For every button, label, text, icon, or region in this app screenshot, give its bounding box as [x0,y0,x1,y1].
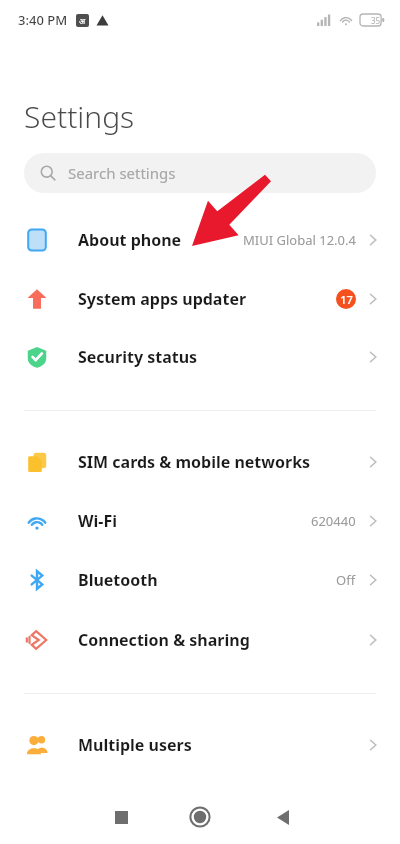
staticText: 35 [371,15,381,26]
button[interactable]: System apps updater [0,273,400,325]
button[interactable]: Bluetooth [0,554,400,606]
staticText: Search settings [68,163,176,183]
staticText: Security status [78,346,198,368]
staticText: Settings [24,96,135,137]
staticText: Multiple users [78,734,192,756]
button[interactable]: Search settings [24,153,376,193]
staticText: अ [79,15,86,26]
staticText: SIM cards & mobile networks [78,451,311,473]
button[interactable]: Multiple users [0,719,400,771]
button[interactable]: Recents [104,800,138,834]
button[interactable]: Security status [0,331,400,383]
staticText: 3:40 PM [18,11,68,29]
staticText: 620440 [311,512,356,530]
staticText: System apps updater [78,288,247,310]
button[interactable]: Wi-Fi [0,495,400,547]
staticText: 17 [340,292,353,307]
button[interactable]: Home [182,799,218,835]
button[interactable]: Connection & sharing [0,614,400,666]
staticText: MIUI Global 12.0.4 [243,231,356,249]
button[interactable]: Back [266,800,300,834]
button[interactable]: SIM cards & mobile networks [0,436,400,488]
button[interactable]: About phone [0,214,400,266]
staticText: Connection & sharing [78,629,250,651]
staticText: Bluetooth [78,569,158,591]
staticText: About phone [78,229,182,251]
staticText: Off [336,571,356,589]
staticText: Wi-Fi [78,510,117,532]
